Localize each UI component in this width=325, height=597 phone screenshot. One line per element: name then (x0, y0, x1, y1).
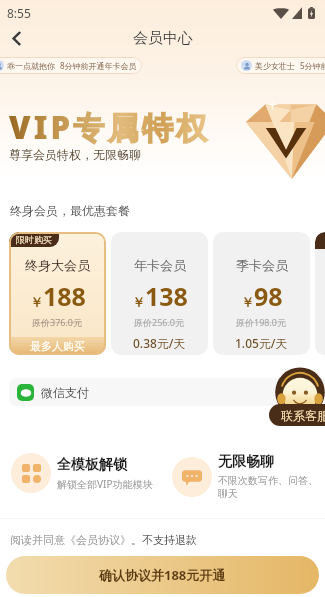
staticText: 尊享会员特权，无限畅聊 (9, 147, 141, 162)
staticText: 无限畅聊 (218, 453, 274, 471)
button[interactable]: 无限畅聊 (172, 453, 322, 500)
staticText: 《会员协议》 (65, 533, 131, 547)
staticText: 微信支付 (41, 385, 89, 400)
staticText: 季卡会员 (236, 257, 288, 273)
staticText: 98 (254, 279, 283, 313)
staticText: 不限次数写作、问答、聊天 (218, 474, 322, 500)
staticText: 原价376.0元 (32, 316, 83, 328)
staticText: 1.05元/天 (235, 335, 288, 351)
staticText: 终身大会员 (25, 257, 90, 273)
staticText: 终身会员，最优惠套餐 (10, 203, 130, 218)
staticText: 会员中心 (133, 29, 193, 48)
button[interactable]: 确认协议并188元开通 (6, 556, 319, 594)
staticText: 解锁全部VIP功能模块 (57, 477, 153, 491)
staticText: 。不支持退款 (131, 533, 197, 547)
staticText: 联系客服 (281, 408, 325, 423)
staticText: 原价198.0元 (236, 316, 287, 328)
button[interactable]: 联系客服 (269, 369, 325, 427)
staticText: 年卡会员 (134, 257, 186, 273)
button[interactable]: 限时购买 (9, 232, 106, 355)
staticText: 8分钟前开通年卡会员 (60, 60, 137, 71)
staticText: 最多人购买 (30, 339, 85, 353)
staticText: ￥ (132, 294, 145, 310)
staticText: ￥ (30, 294, 43, 310)
staticText: 确认协议并188元开通 (99, 566, 226, 584)
staticText: 原价256.0元 (134, 316, 185, 328)
staticText: 8:55 (7, 5, 31, 21)
button[interactable] (315, 232, 325, 355)
staticText: 188 (43, 279, 86, 313)
staticText: 乖一点就抱你 (7, 61, 55, 71)
staticText: ￥ (241, 294, 254, 310)
staticText: 美少女壮士 (255, 61, 295, 71)
button[interactable]: 微信支付 (9, 378, 325, 406)
staticText: 全模板解锁 (57, 456, 127, 474)
staticText: 5分钟前升 (300, 60, 325, 71)
staticText: 限时购买 (16, 234, 52, 245)
staticText: VIP专属特权 (9, 106, 211, 148)
staticText: 138 (145, 279, 188, 313)
button[interactable]: Back (0, 24, 32, 52)
staticText: 阅读并同意 (10, 533, 65, 547)
staticText: 0.38元/天 (133, 335, 186, 351)
button[interactable]: 全模板解锁 (11, 453, 172, 493)
button[interactable]: 年卡会员 (111, 232, 208, 355)
button[interactable]: 季卡会员 (213, 232, 310, 355)
